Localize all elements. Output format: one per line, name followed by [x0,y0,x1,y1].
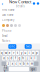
button[interactable]: e [8,51,11,55]
staticText: New Contact [9,0,31,4]
button[interactable]: c [14,61,18,66]
staticText: Email [2,34,8,38]
button[interactable]: Info [36,0,40,7]
staticText: First name [2,8,15,12]
staticText: c [16,62,17,65]
button[interactable]: w [4,51,7,55]
staticText: r [13,51,14,55]
staticText: x [12,62,13,65]
staticText: f [15,56,16,60]
staticText: d [11,56,13,60]
staticText: Notes [2,39,10,43]
staticText: t [17,51,18,55]
button[interactable]: d [10,56,13,60]
button[interactable]: q [0,51,4,55]
staticText: u [24,51,26,55]
staticText: s [7,56,8,60]
button[interactable]: n [26,61,29,66]
staticText: two [26,45,31,48]
button[interactable]: 123 [3,67,8,71]
staticText: Last name [2,13,14,17]
staticText: i [29,51,30,55]
button[interactable]: r [12,51,15,55]
staticText: g [18,56,20,60]
button[interactable]: i [28,51,31,55]
staticText: o [32,51,34,55]
staticText: m [31,62,33,65]
button[interactable]: u [24,51,27,55]
button[interactable]: x [11,61,14,66]
staticText: e [9,51,11,55]
button[interactable]: m [30,61,33,66]
staticText: j [27,56,28,60]
staticText: go [31,67,35,71]
button[interactable]: Shift [1,61,6,66]
staticText: l [34,56,35,60]
staticText: z [8,62,9,65]
button[interactable]: b [22,61,25,66]
staticText: 123 [4,66,8,72]
button[interactable]: j [26,56,29,60]
button[interactable]: s [6,56,9,60]
staticText: one [9,45,15,48]
button[interactable]: l [33,56,37,60]
staticText: a [3,56,4,60]
button[interactable]: h [22,56,25,60]
button[interactable]: one [8,44,16,49]
button[interactable]: two [25,44,32,49]
staticText: p [36,51,38,55]
button[interactable]: v [18,61,22,66]
staticText: ‹ [1,0,3,7]
staticText: details [15,4,24,8]
staticText: Company [2,18,14,22]
button[interactable]: t [16,51,19,55]
staticText: b [23,62,25,65]
button[interactable]: y [20,51,23,55]
staticText: k [31,56,32,60]
button[interactable]: o [32,51,35,55]
staticText: n [27,62,29,65]
button[interactable]: p [35,51,39,55]
button[interactable]: a [2,56,5,60]
staticText: q [1,51,3,55]
button[interactable]: Back [0,0,5,7]
button[interactable]: Call [32,0,36,7]
staticText: y [21,51,22,55]
staticText: h [22,56,24,60]
staticText: w [5,51,7,55]
button[interactable]: f [14,56,17,60]
button[interactable]: k [29,56,33,60]
button[interactable]: g [18,56,21,60]
staticText: Phone [2,29,12,33]
button[interactable]: go [30,67,37,71]
button[interactable]: z [7,61,10,66]
